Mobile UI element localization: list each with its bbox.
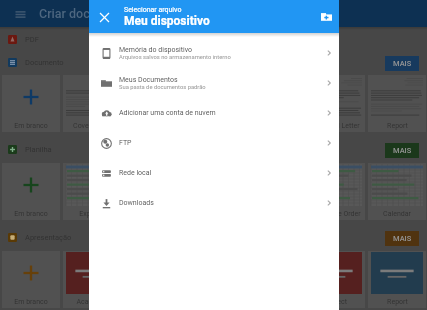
staticText: Report [387, 122, 408, 130]
staticText: Report [387, 298, 408, 306]
button[interactable]: New folder [315, 6, 337, 28]
staticText: Selecionar arquivo [124, 6, 182, 14]
staticText: Rede local [119, 169, 152, 177]
staticText: Apresentação [25, 233, 72, 242]
staticText: Expense [79, 210, 106, 218]
staticText: Cover Letter [73, 122, 111, 130]
staticText: Calendar [383, 210, 411, 218]
staticText: Em branco [14, 210, 48, 218]
staticText: Informal Letter [313, 122, 360, 130]
button[interactable]: Informal Letter [307, 75, 365, 132]
button[interactable]: Report [368, 251, 426, 308]
staticText: Em branco [14, 122, 48, 130]
staticText: Documento [25, 58, 64, 67]
staticText: MAIS [393, 59, 412, 68]
button[interactable]: Academic [63, 251, 121, 308]
staticText: MAIS [393, 146, 412, 155]
staticText: Em branco [14, 298, 48, 306]
staticText: Sua pasta de documentos padrão [119, 84, 206, 91]
staticText: Memória do dispositivo [119, 46, 193, 54]
button[interactable]: Cover Letter [63, 75, 121, 132]
button[interactable]: Expense [63, 163, 121, 220]
button[interactable]: Em branco [2, 251, 60, 308]
button[interactable]: Em branco [2, 75, 60, 132]
button[interactable]: Report [368, 75, 426, 132]
button[interactable]: Budget [124, 163, 182, 220]
staticText: Downloads [119, 199, 154, 207]
button[interactable]: Em branco [2, 163, 60, 220]
button[interactable]: MAIS [385, 143, 419, 158]
button[interactable]: Resume [124, 75, 182, 132]
staticText: Adicionar uma conta de nuvem [119, 109, 216, 117]
staticText: Criar documento [39, 6, 133, 21]
button[interactable]: MAIS [385, 56, 419, 71]
staticText: Arquivos salvos no armazenamento interno [119, 54, 231, 61]
button[interactable]: Memória do dispositivo [89, 38, 339, 68]
button[interactable]: FTP [89, 128, 339, 158]
button[interactable]: Close [89, 2, 119, 32]
staticText: MAIS [393, 234, 412, 243]
button[interactable]: Calendar [368, 163, 426, 220]
button[interactable]: Adicionar uma conta de nuvem [89, 98, 339, 128]
button[interactable]: Fax Cover [185, 75, 243, 132]
staticText: Planilha [25, 145, 52, 154]
button[interactable]: MAIS [385, 231, 419, 246]
button[interactable]: Meus Documentos [89, 68, 339, 98]
staticText: Project Presentation [307, 298, 365, 306]
staticText: Academic [76, 298, 108, 306]
staticText: PDF [25, 35, 39, 44]
button[interactable]: Purchase Order [307, 163, 365, 220]
staticText: Purchase Order [312, 210, 361, 218]
button[interactable]: Project Presentation [307, 251, 365, 308]
button[interactable]: Rede local [89, 158, 339, 188]
staticText: FTP [119, 139, 132, 147]
staticText: Meus Documentos [119, 76, 178, 84]
staticText: Meu dispositivo [124, 14, 210, 28]
button[interactable]: Downloads [89, 188, 339, 218]
button[interactable]: Menu [12, 6, 28, 22]
